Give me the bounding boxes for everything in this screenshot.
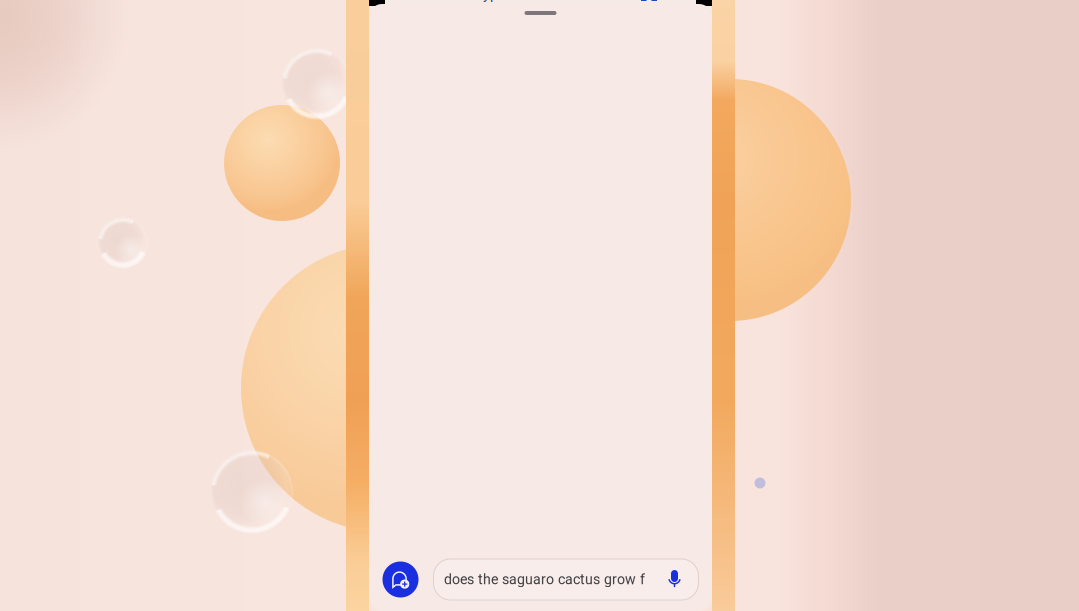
button[interactable]: does the saguaro cactus grow f — [433, 559, 698, 600]
button[interactable]: New conversation — [382, 561, 418, 597]
staticText: Search or type URL — [411, 0, 537, 3]
staticText: does the saguaro cactus grow f — [444, 571, 645, 588]
